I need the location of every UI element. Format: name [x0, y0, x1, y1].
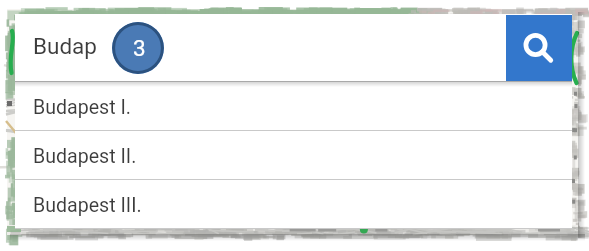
button[interactable]: Budapest I.	[15, 82, 572, 130]
staticText: Budapest III.	[33, 194, 142, 217]
staticText: Budapest I.	[33, 96, 131, 119]
staticText: Budap	[33, 33, 97, 59]
staticText: Budapest II.	[33, 145, 137, 168]
button[interactable]: Search	[506, 15, 572, 81]
staticText: 3	[133, 35, 146, 61]
button[interactable]: Budap	[15, 14, 506, 81]
button[interactable]: Budapest III.	[15, 180, 572, 228]
button[interactable]: Budapest II.	[15, 131, 572, 179]
button[interactable]: Step 3	[112, 22, 164, 74]
